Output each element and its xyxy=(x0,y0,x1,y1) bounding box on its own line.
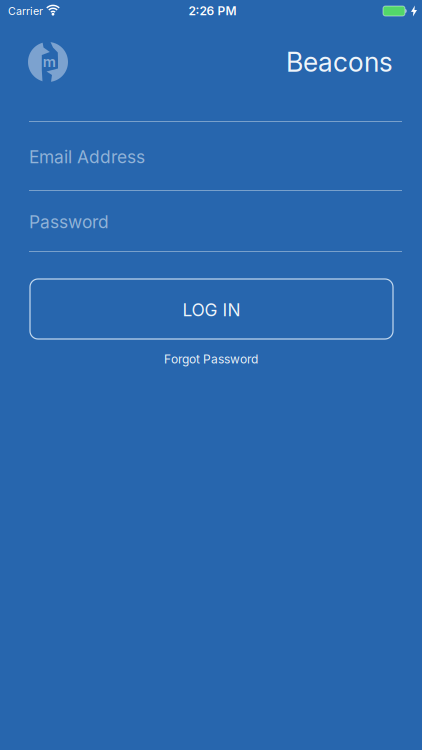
staticText: Forgot Password xyxy=(164,352,258,366)
staticText: LOG IN xyxy=(182,300,240,320)
staticText: m xyxy=(43,53,56,70)
button[interactable]: Forgot Password xyxy=(164,352,258,366)
staticText: Carrier xyxy=(8,5,43,17)
button[interactable]: LOG IN xyxy=(30,279,393,339)
staticText: Password xyxy=(29,212,109,232)
staticText: Beacons xyxy=(286,46,393,78)
staticText: Email Address xyxy=(29,147,145,167)
button[interactable]: Email Address xyxy=(29,122,402,190)
button[interactable]: Password xyxy=(29,191,402,251)
staticText: 2:26 PM xyxy=(188,4,236,18)
